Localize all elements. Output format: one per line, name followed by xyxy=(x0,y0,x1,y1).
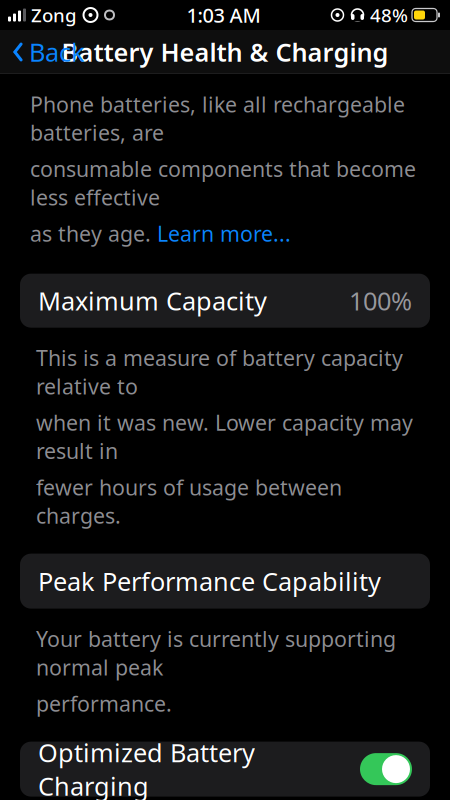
staticText: fewer hours of usage between charges. xyxy=(36,473,342,530)
staticText: when it was new. Lower capacity may resu… xyxy=(36,408,413,465)
staticText: as they age. xyxy=(30,219,157,248)
staticText: Phone batteries, like all rechargeable b… xyxy=(30,90,405,147)
staticText: 48% xyxy=(370,3,408,27)
staticText: Optimized Battery Charging xyxy=(38,735,255,800)
staticText: Your battery is currently supporting nor… xyxy=(36,625,396,681)
staticText: Battery Health & Charging xyxy=(61,35,388,69)
staticText: consumable components that become less e… xyxy=(30,155,416,211)
button[interactable]: Back xyxy=(0,29,95,75)
staticText: Back xyxy=(29,35,85,69)
button[interactable]: Optimized Battery Charging xyxy=(20,742,430,797)
staticText: Peak Performance Capability xyxy=(38,564,381,598)
staticText: This is a measure of battery capacity re… xyxy=(36,344,403,400)
button[interactable]: Peak Performance Capability xyxy=(20,554,430,609)
staticText: performance. xyxy=(36,689,172,718)
staticText: Learn more... xyxy=(157,219,291,248)
staticText: Maximum Capacity xyxy=(38,284,267,317)
staticText: 100% xyxy=(349,284,412,317)
button[interactable]: Learn more... xyxy=(157,219,291,248)
staticText: 1:03 AM xyxy=(186,2,260,28)
staticText: Zong xyxy=(31,3,77,27)
button[interactable]: Maximum Capacity xyxy=(20,274,430,328)
